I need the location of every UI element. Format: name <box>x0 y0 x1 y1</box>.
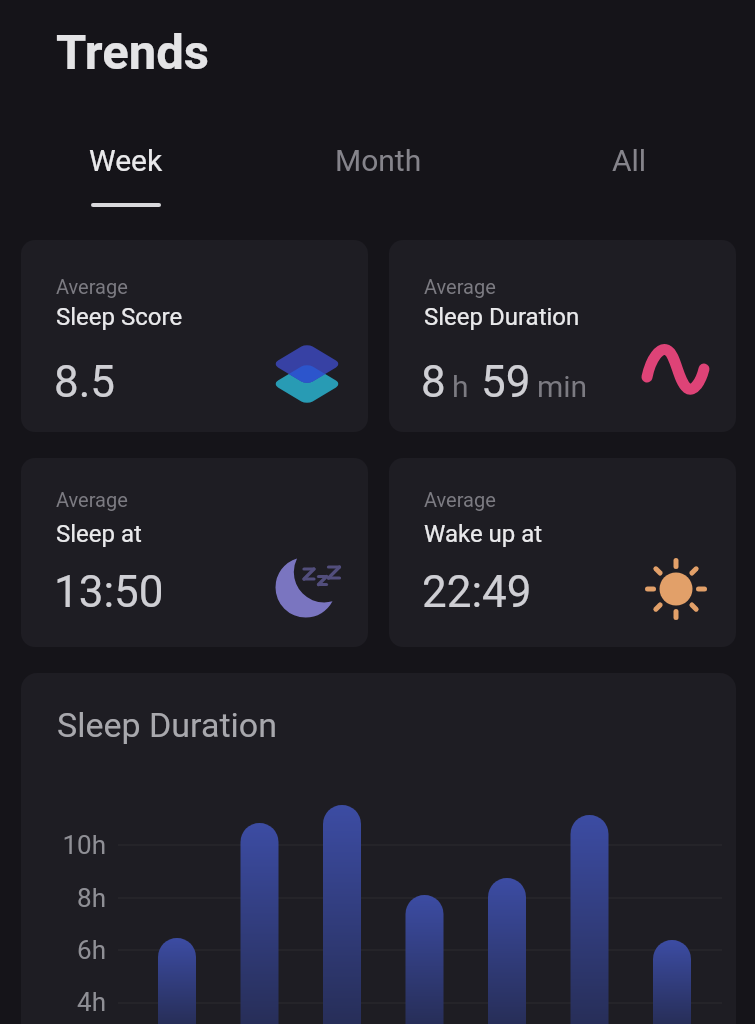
button[interactable]: All <box>504 138 755 183</box>
button[interactable]: Month <box>252 138 504 183</box>
staticText: 8 <box>421 356 446 408</box>
staticText: 10h <box>30 830 106 860</box>
staticText: h <box>452 369 469 404</box>
button[interactable] <box>389 240 736 432</box>
staticText: 8h <box>30 883 106 913</box>
staticText: 6h <box>30 935 106 965</box>
staticText: 13:50 <box>54 566 164 618</box>
staticText: Average <box>56 488 128 511</box>
staticText: Trends <box>56 24 209 81</box>
staticText: Sleep Score <box>56 303 183 331</box>
button[interactable] <box>389 458 736 647</box>
staticText: Average <box>424 488 496 511</box>
staticText: Week <box>89 143 163 178</box>
staticText: Sleep at <box>56 520 142 548</box>
button[interactable] <box>21 240 368 432</box>
staticText: 22:49 <box>422 566 532 618</box>
button[interactable] <box>21 458 368 647</box>
button[interactable]: Week <box>0 138 252 183</box>
staticText: Month <box>335 143 422 178</box>
staticText: Average <box>56 275 128 298</box>
staticText: Sleep Duration <box>57 705 278 745</box>
staticText: 59 <box>481 356 531 408</box>
staticText: Average <box>424 275 496 298</box>
staticText: Wake up at <box>424 520 543 548</box>
staticText: Sleep Duration <box>424 303 580 331</box>
staticText: 4h <box>30 987 106 1017</box>
staticText: All <box>612 143 647 178</box>
staticText: min <box>537 369 588 404</box>
staticText: 8.5 <box>54 356 116 408</box>
